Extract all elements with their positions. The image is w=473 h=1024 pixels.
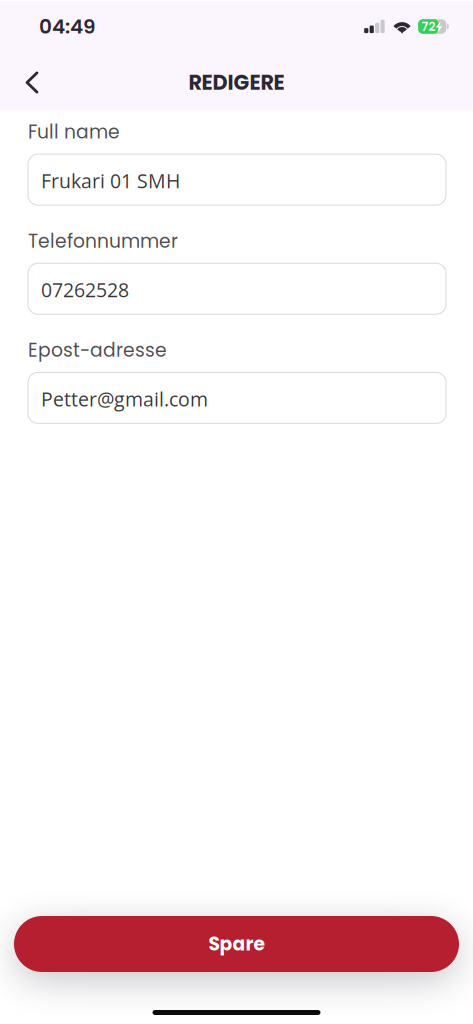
staticText: Epost-adresse bbox=[28, 337, 167, 363]
button[interactable]: Frukari 01 SMH bbox=[28, 154, 446, 205]
button[interactable]: Petter@gmail.com bbox=[28, 372, 446, 423]
staticText: 04:49 bbox=[39, 12, 96, 40]
staticText: REDIGERE bbox=[188, 68, 284, 97]
staticText: Telefonnummer bbox=[28, 228, 178, 254]
button[interactable]: Back bbox=[10, 60, 54, 104]
staticText: 72 bbox=[421, 18, 435, 35]
staticText: Frukari 01 SMH bbox=[41, 167, 180, 194]
button[interactable]: Spare bbox=[14, 916, 459, 972]
button[interactable]: 07262528 bbox=[28, 263, 446, 314]
staticText: Petter@gmail.com bbox=[41, 386, 208, 412]
staticText: Full name bbox=[28, 119, 120, 145]
staticText: Spare bbox=[208, 931, 264, 957]
staticText: 07262528 bbox=[41, 276, 129, 303]
